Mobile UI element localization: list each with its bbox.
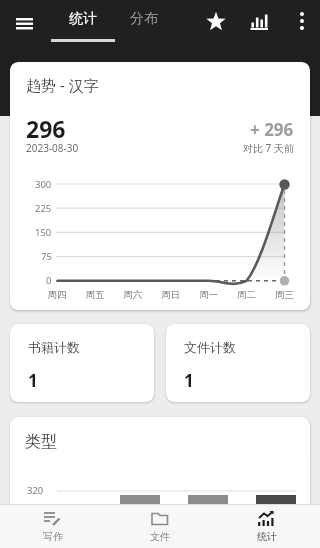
button[interactable] [284,0,320,42]
button[interactable]: 类型 [10,417,310,548]
button[interactable]: 分布 [115,0,173,42]
staticText: + 296 [250,118,294,141]
staticText: 文件计数 [184,339,236,355]
button[interactable]: 书籍计数 [10,324,154,402]
staticText: 书籍计数 [28,339,80,355]
staticText: 分布 [130,10,158,28]
button[interactable]: 趋势 - 汉字 [10,62,310,310]
button[interactable]: 写作 [0,505,106,548]
staticText: 统计 [257,530,277,543]
staticText: 296 [26,113,66,144]
staticText: 1 [184,369,194,392]
button[interactable] [196,0,236,42]
staticText: 写作 [43,530,63,543]
button[interactable]: 统计 [213,505,320,548]
button[interactable] [240,0,280,42]
staticText: 文件 [150,530,170,543]
staticText: 1 [28,369,38,392]
staticText: 类型 [25,432,57,452]
button[interactable]: 文件计数 [166,324,310,402]
button[interactable] [0,0,48,42]
staticText: 趋势 - 汉字 [26,75,99,95]
button[interactable]: 统计 [51,0,115,42]
button[interactable]: 文件 [106,505,213,548]
staticText: 统计 [69,10,97,28]
staticText: 2023-08-30 [26,141,79,155]
staticText: 对比 7 天前 [243,141,294,155]
